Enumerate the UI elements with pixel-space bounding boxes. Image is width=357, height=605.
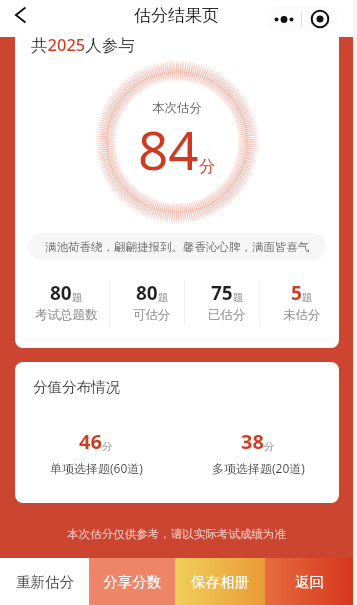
staticText: 5 (291, 280, 302, 306)
staticText: 题 (72, 291, 83, 304)
staticText: 未估分 (283, 307, 321, 323)
staticText: 考试总题数 (35, 307, 98, 323)
staticText: 共2025人参与 (31, 37, 135, 56)
staticText: 多项选择题(20道) (212, 460, 305, 476)
staticText: 保存相册 (191, 573, 249, 591)
staticText: 重新估分 (16, 573, 74, 591)
staticText: 分 (199, 156, 216, 177)
staticText: 80 (136, 280, 158, 306)
button[interactable]: 重新估分 (0, 558, 89, 605)
button[interactable]: 保存相册 (175, 558, 265, 605)
staticText: 分 (102, 440, 113, 453)
button[interactable]: Back (6, 1, 34, 29)
staticText: 38 (241, 428, 264, 455)
staticText: 84 (138, 113, 199, 185)
button[interactable]: More options (266, 6, 338, 32)
staticText: 46 (79, 428, 102, 455)
staticText: 题 (158, 291, 169, 304)
staticText: 题 (233, 291, 244, 304)
staticText: 题 (302, 291, 313, 304)
staticText: 已估分 (208, 307, 246, 323)
staticText: 本次估分 (152, 100, 202, 116)
button[interactable]: 返回 (265, 558, 353, 605)
staticText: 可估分 (133, 307, 171, 323)
button[interactable]: 分享分数 (89, 558, 175, 605)
staticText: 75 (211, 280, 233, 306)
staticText: 分享分数 (103, 573, 161, 591)
staticText: 80 (50, 280, 72, 306)
staticText: 本次估分仅供参考，请以实际考试成绩为准 (0, 527, 353, 541)
staticText: 满池荷香绕，翩翩捷报到。馨香沁心脾，满面皆喜气 (45, 240, 310, 254)
staticText: 分 (264, 440, 275, 453)
staticText: 估分结果页 (134, 5, 219, 26)
staticText: 分值分布情况 (33, 378, 120, 396)
staticText: 返回 (295, 573, 324, 591)
staticText: 单项选择题(60道) (50, 460, 143, 476)
